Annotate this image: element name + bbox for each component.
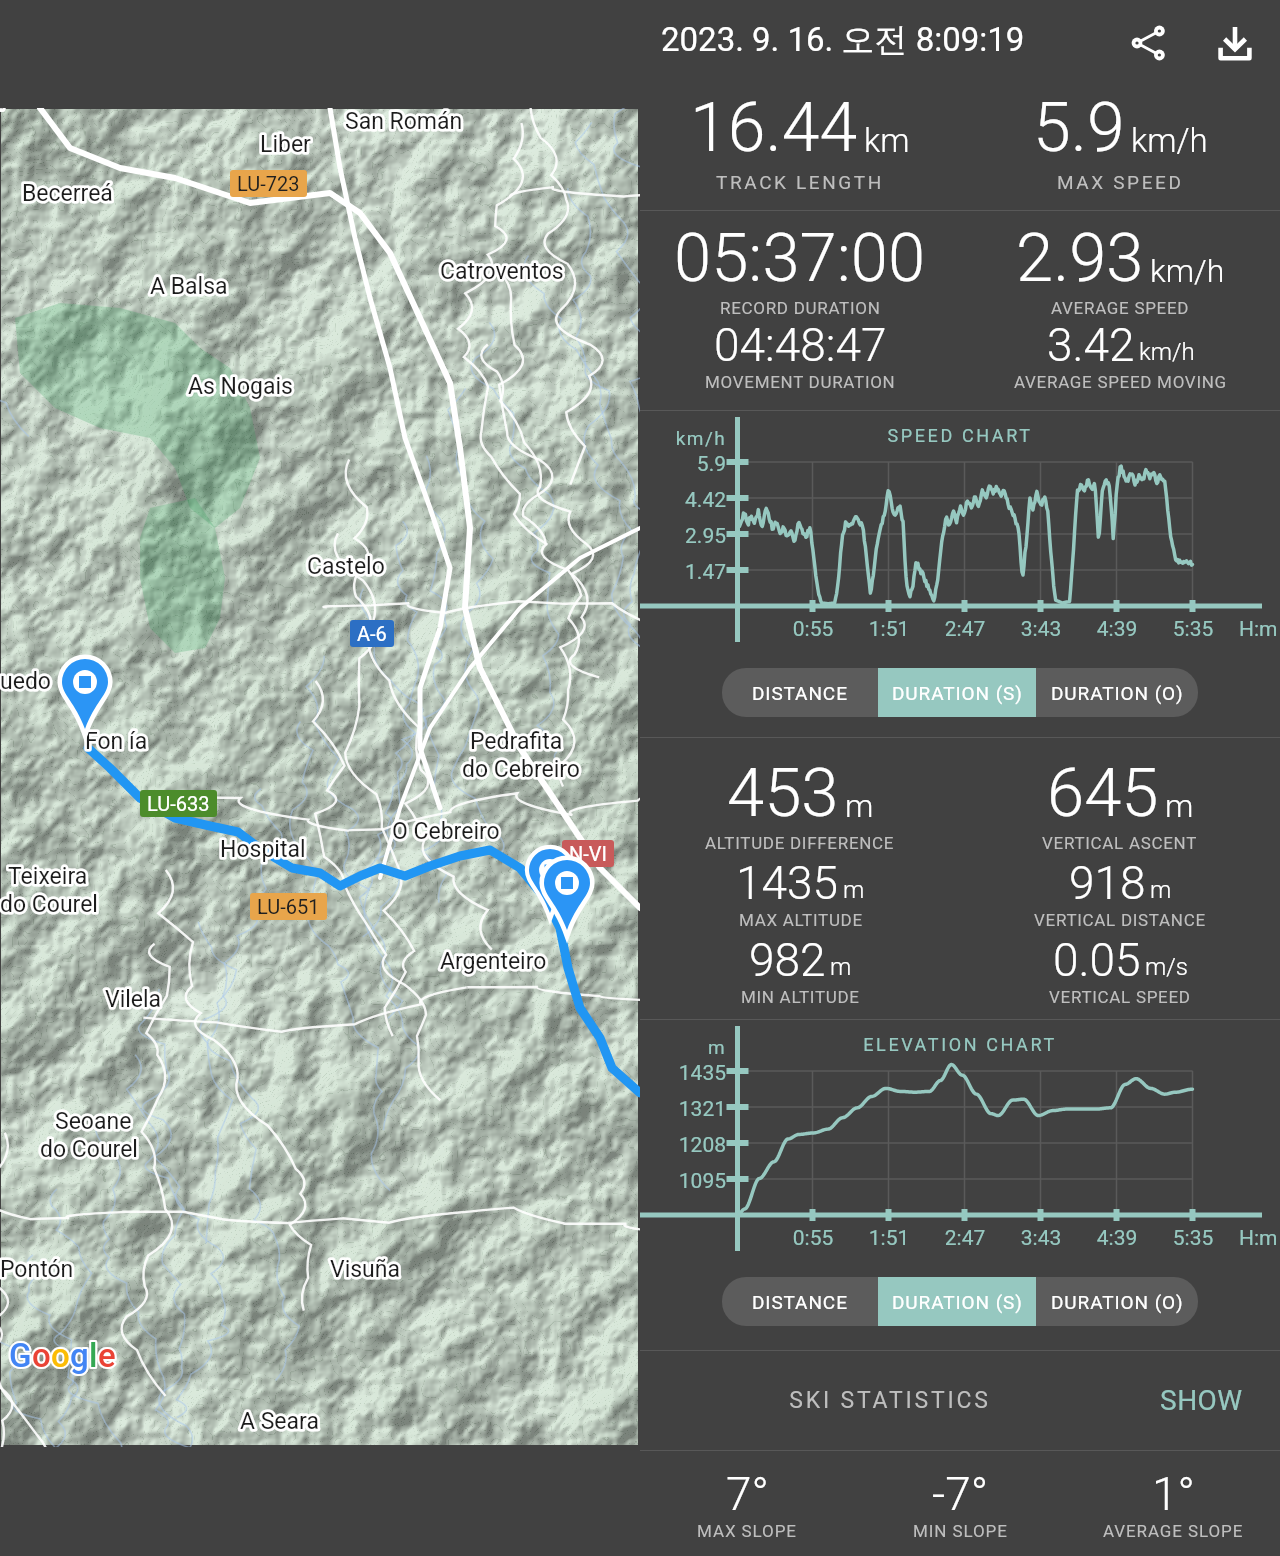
staticText: N-VI	[569, 842, 607, 865]
staticText: km/h	[1131, 121, 1208, 160]
staticText: do Courel	[0, 891, 98, 918]
staticText: -7°	[932, 1467, 989, 1521]
staticText: AVERAGE SLOPE	[1103, 1521, 1244, 1541]
staticText: San Román	[345, 108, 463, 135]
staticText: O Cebreiro	[392, 818, 500, 845]
staticText: Becerreá	[22, 180, 113, 207]
staticText: Castelo	[307, 553, 385, 580]
staticText: m	[1150, 876, 1172, 904]
button[interactable]: DURATION (O)	[1036, 1277, 1198, 1326]
button[interactable]: Download	[1204, 12, 1266, 74]
staticText: Pontón	[0, 1256, 74, 1283]
staticText: MAX SPEED	[1057, 171, 1184, 193]
staticText: A Seara	[240, 1408, 319, 1435]
staticText: SKI STATISTICS	[630, 1387, 1150, 1414]
staticText: AVERAGE SPEED	[1051, 298, 1190, 318]
staticText: Visuña	[330, 1256, 400, 1283]
staticText: LU-723	[237, 172, 300, 195]
staticText: H:m	[1239, 617, 1278, 642]
staticText: 0:55	[763, 1226, 863, 1251]
staticText: do Cebreiro	[462, 756, 580, 783]
staticText: 3:43	[991, 1226, 1091, 1251]
staticText: 1321	[640, 1097, 726, 1122]
staticText: o	[32, 1336, 51, 1375]
staticText: MIN SLOPE	[913, 1521, 1008, 1541]
staticText: km/h	[1150, 252, 1225, 290]
staticText: G	[9, 1336, 32, 1375]
staticText: m	[640, 1036, 726, 1058]
staticText: 453	[727, 754, 839, 833]
button[interactable]: DISTANCE	[722, 668, 878, 717]
staticText: 2:47	[915, 617, 1015, 642]
staticText: Seoane	[55, 1108, 132, 1135]
staticText: do Cebreiro	[462, 756, 580, 783]
staticText: 16.44	[690, 88, 858, 168]
staticText: DURATION (S)	[892, 682, 1023, 704]
staticText: 5:35	[1143, 617, 1243, 642]
staticText: Vilela	[105, 986, 162, 1013]
staticText: Vilela	[105, 986, 162, 1013]
staticText: Argenteiro	[440, 948, 547, 975]
staticText: AVERAGE SPEED MOVING	[1014, 372, 1227, 392]
staticText: Pedrafita	[470, 728, 563, 755]
staticText: e	[98, 1336, 116, 1375]
button[interactable]: Map	[0, 108, 640, 1447]
staticText: San Román	[345, 108, 463, 135]
staticText: Pedrafita	[470, 728, 563, 755]
staticText: As Nogais	[188, 373, 293, 400]
staticText: 0:55	[763, 617, 863, 642]
staticText: MIN ALTITUDE	[741, 987, 860, 1007]
staticText: 2023. 9. 16. 오전 8:09:19	[661, 19, 1025, 61]
staticText: 4:39	[1067, 1226, 1167, 1251]
button[interactable]: SKI STATISTICS	[640, 1351, 1280, 1450]
staticText: DISTANCE	[752, 682, 848, 704]
staticText: do Courel	[40, 1136, 138, 1163]
staticText: 0.05	[1053, 933, 1141, 987]
staticText: g	[70, 1336, 89, 1375]
staticText: 1:51	[839, 1226, 939, 1251]
button[interactable]: DISTANCE	[722, 1277, 878, 1326]
staticText: Argenteiro	[440, 948, 547, 975]
staticText: 1°	[1152, 1467, 1195, 1521]
staticText: 1435	[736, 856, 839, 910]
staticText: SHOW	[1160, 1384, 1243, 1417]
staticText: DISTANCE	[752, 1291, 848, 1313]
staticText: Becerreá	[22, 180, 113, 207]
staticText: Seoane	[55, 1108, 132, 1135]
staticText: 5.9	[1033, 88, 1125, 168]
staticText: VERTICAL DISTANCE	[1034, 910, 1206, 930]
staticText: VERTICAL ASCENT	[1042, 833, 1198, 853]
staticText: 4:39	[1067, 617, 1167, 642]
staticText: Hospital	[220, 836, 306, 863]
staticText: uedo	[0, 668, 51, 695]
staticText: m	[1165, 787, 1194, 825]
staticText: do Courel	[40, 1136, 138, 1163]
staticText: km	[864, 121, 910, 160]
staticText: Castelo	[307, 553, 385, 580]
staticText: m	[843, 876, 865, 904]
staticText: 918	[1069, 856, 1146, 910]
button[interactable]: DURATION (S)	[878, 668, 1036, 717]
staticText: Teixeira	[8, 863, 88, 890]
staticText: 1208	[640, 1133, 726, 1158]
staticText: DURATION (S)	[892, 1291, 1023, 1313]
staticText: o	[51, 1336, 70, 1375]
staticText: Catroventos	[440, 258, 564, 285]
staticText: 645	[1047, 754, 1159, 833]
button[interactable]: Share	[1118, 12, 1180, 74]
button[interactable]: DURATION (S)	[878, 1277, 1036, 1326]
staticText: 5.9	[640, 452, 726, 477]
staticText: km/h	[1139, 338, 1195, 366]
staticText: Liber	[260, 131, 311, 158]
staticText: LU-633	[0, 108, 4, 109]
staticText: m	[830, 953, 852, 981]
staticText: o	[32, 1336, 51, 1375]
staticText: do Courel	[0, 891, 98, 918]
staticText: SPEED CHART	[640, 425, 1280, 446]
staticText: LU-633	[0, 108, 4, 109]
staticText: o	[51, 1336, 70, 1375]
staticText: 1:51	[839, 617, 939, 642]
staticText: 3:43	[991, 617, 1091, 642]
button[interactable]: DURATION (O)	[1036, 668, 1198, 717]
staticText: 5:35	[1143, 1226, 1243, 1251]
